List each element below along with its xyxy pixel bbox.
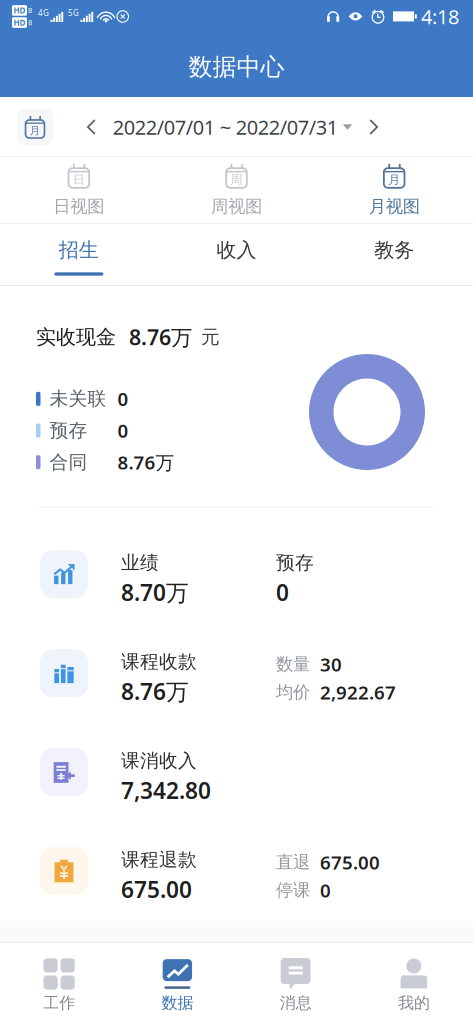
staticText: 收入 bbox=[216, 238, 256, 262]
staticText: 教务 bbox=[374, 238, 414, 262]
button[interactable]: 月 bbox=[315, 157, 473, 224]
staticText: 30 bbox=[320, 652, 342, 677]
staticText: 数据 bbox=[161, 993, 193, 1013]
staticText: 8.70万 bbox=[121, 577, 189, 607]
staticText: 课程退款 bbox=[121, 848, 197, 871]
staticText: 5G bbox=[68, 8, 79, 18]
staticText: B bbox=[28, 6, 32, 15]
button[interactable]: 下一周期 bbox=[363, 113, 384, 141]
button[interactable]: 收入 bbox=[158, 224, 315, 286]
button[interactable]: 招生 bbox=[0, 224, 158, 286]
staticText: 0 bbox=[117, 386, 128, 411]
staticText: 我的 bbox=[398, 993, 430, 1013]
staticText: 均价 bbox=[276, 682, 310, 703]
staticText: HD bbox=[13, 17, 25, 28]
button[interactable]: 工作 bbox=[0, 943, 118, 1024]
staticText: 675.00 bbox=[320, 850, 380, 875]
staticText: 日 bbox=[73, 172, 85, 187]
staticText: 直退 bbox=[276, 852, 310, 873]
staticText: 2,922.67 bbox=[320, 680, 396, 705]
staticText: 业绩 bbox=[121, 551, 159, 574]
button[interactable]: 我的 bbox=[355, 943, 473, 1024]
staticText: 课程收款 bbox=[121, 650, 197, 673]
button[interactable]: 数据 bbox=[118, 943, 236, 1024]
staticText: 预存 bbox=[276, 551, 314, 574]
staticText: 实收现金 bbox=[36, 325, 116, 349]
staticText: 工作 bbox=[43, 993, 75, 1013]
staticText: 数据中心 bbox=[188, 52, 284, 82]
button[interactable]: 周 bbox=[158, 157, 315, 224]
staticText: 8.76万 bbox=[129, 323, 192, 351]
staticText: 招生 bbox=[59, 238, 99, 262]
staticText: 0 bbox=[117, 418, 128, 443]
staticText: 0 bbox=[276, 577, 289, 607]
button[interactable]: 日 bbox=[0, 157, 158, 224]
button[interactable]: 上一周期 bbox=[81, 113, 102, 141]
staticText: 未关联 bbox=[49, 387, 106, 410]
staticText: 课消收入 bbox=[121, 749, 197, 772]
staticText: 月视图 bbox=[369, 196, 420, 217]
button[interactable]: 教务 bbox=[315, 224, 473, 286]
staticText: 周视图 bbox=[211, 196, 262, 217]
staticText: 消息 bbox=[280, 993, 312, 1013]
staticText: 4:18 bbox=[421, 3, 459, 30]
staticText: 合同 bbox=[49, 451, 87, 474]
staticText: 7,342.80 bbox=[121, 775, 211, 805]
staticText: 0 bbox=[320, 878, 331, 903]
staticText: 周 bbox=[230, 172, 242, 187]
staticText: 停课 bbox=[276, 880, 310, 901]
staticText: 8.76万 bbox=[117, 450, 174, 475]
staticText: 2022/07/01 ~ 2022/07/31 bbox=[113, 114, 338, 140]
staticText: HD bbox=[13, 5, 25, 16]
staticText: 月 bbox=[388, 172, 400, 187]
staticText: 数量 bbox=[276, 654, 310, 675]
staticText: 月 bbox=[29, 124, 40, 137]
staticText: B bbox=[28, 18, 32, 27]
button[interactable]: 消息 bbox=[236, 943, 355, 1024]
staticText: 预存 bbox=[49, 419, 87, 442]
staticText: 675.00 bbox=[121, 874, 192, 904]
staticText: 8.76万 bbox=[121, 676, 189, 706]
staticText: 元 bbox=[201, 325, 220, 348]
staticText: 日视图 bbox=[53, 196, 104, 217]
staticText: 4G bbox=[38, 8, 49, 18]
button[interactable]: 切换周期 bbox=[17, 109, 53, 145]
